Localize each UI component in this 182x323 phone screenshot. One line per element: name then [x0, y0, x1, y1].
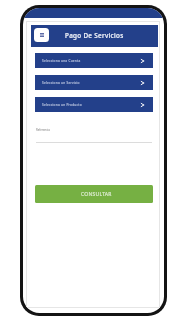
staticText: CONSULTAR — [81, 191, 112, 198]
button[interactable]: Selecciona un Servicio — [35, 75, 153, 90]
button[interactable]: Menu — [34, 28, 49, 42]
staticText: Selecciona una Cuenta — [42, 59, 81, 63]
staticText: Referencia — [36, 128, 50, 132]
button[interactable]: Selecciona una Cuenta — [35, 53, 153, 68]
button[interactable]: CONSULTAR — [35, 185, 153, 203]
button[interactable]: Selecciona un Producto — [35, 97, 153, 112]
staticText: Selecciona un Servicio — [42, 81, 80, 85]
staticText: Selecciona un Producto — [42, 103, 82, 107]
staticText: Pago De Servicios — [65, 31, 124, 40]
